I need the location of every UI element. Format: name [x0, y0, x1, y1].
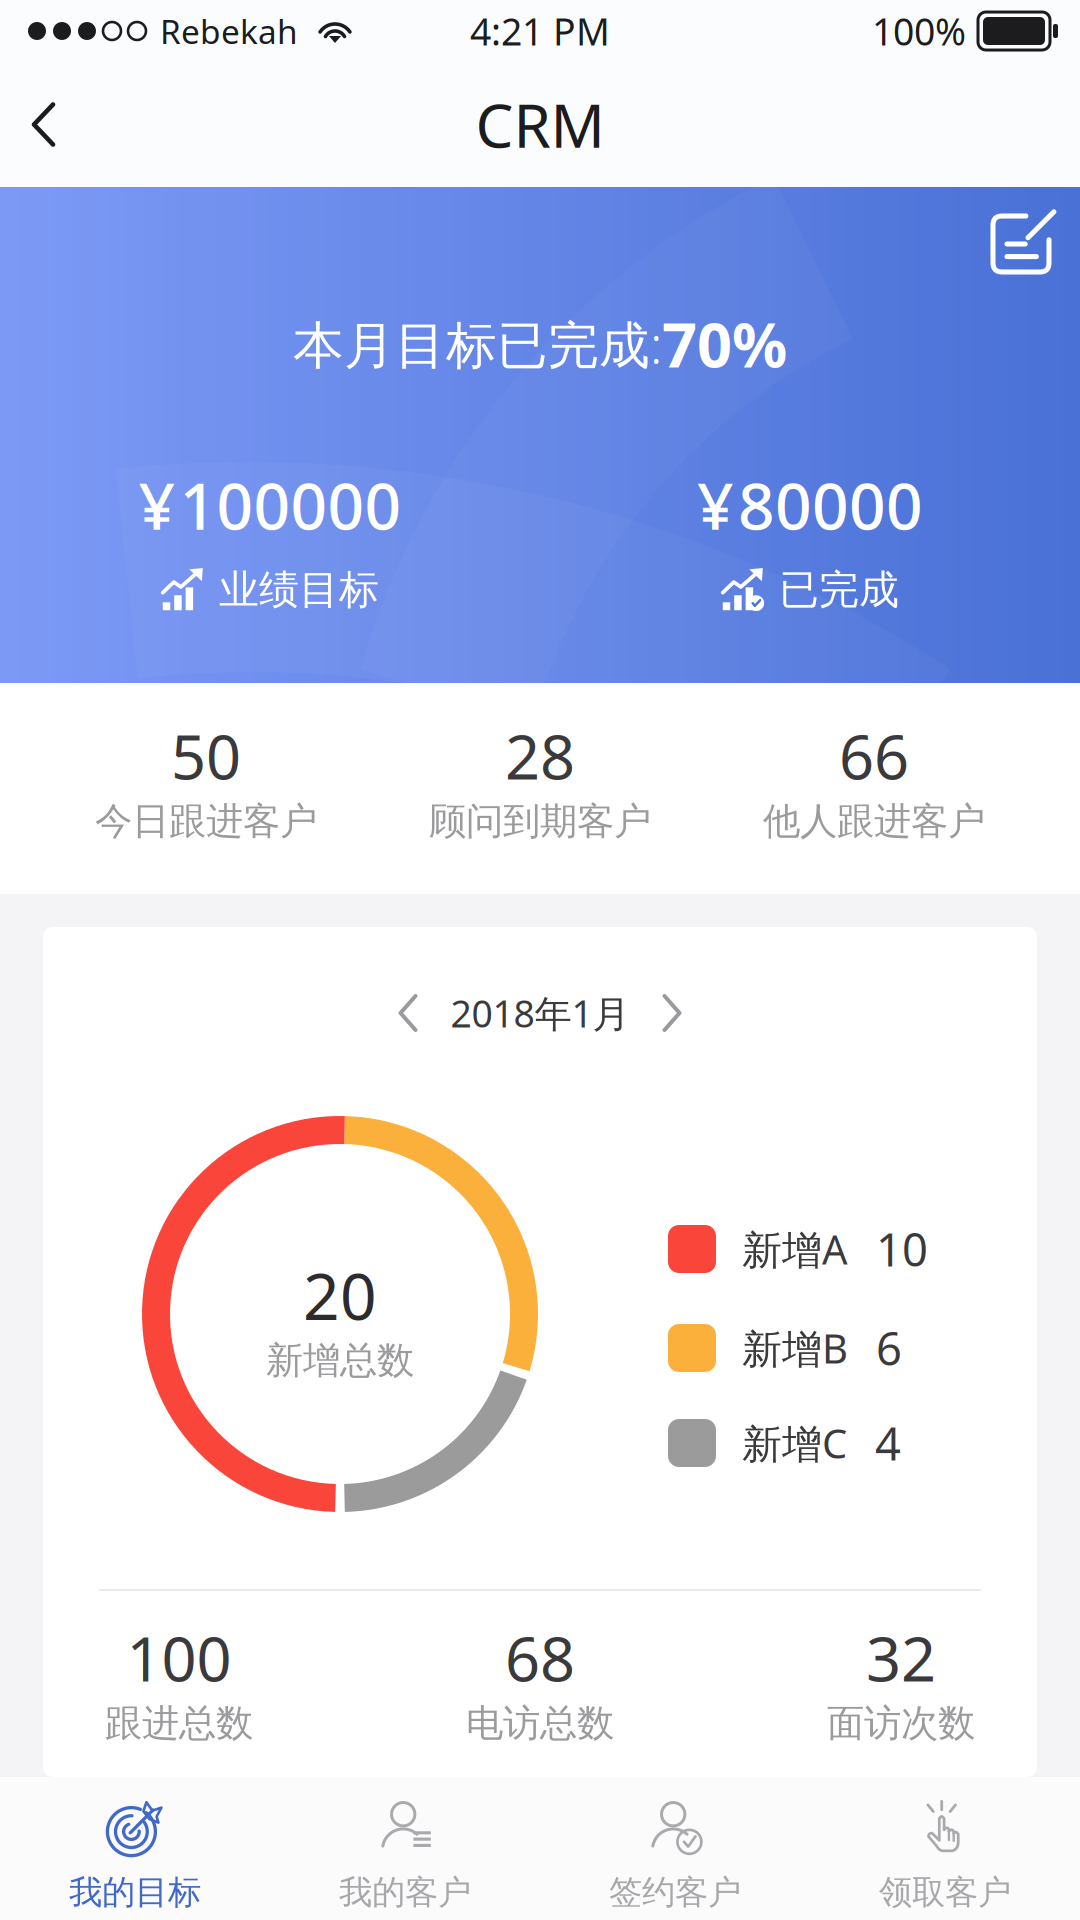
staticText: 4:21 PM [470, 6, 610, 56]
staticText: 10 [876, 1219, 928, 1279]
staticText: 我的客户 [339, 1872, 471, 1913]
staticText: Rebekah [160, 9, 298, 53]
staticText: 电访总数 [466, 1700, 614, 1746]
staticText: 100 [126, 1617, 231, 1698]
staticText: 面访次数 [827, 1700, 975, 1746]
button[interactable]: 我的目标 [0, 1770, 270, 1920]
staticText: 他人跟进客户 [763, 798, 985, 844]
staticText: 4 [875, 1413, 901, 1473]
staticText: 20 [303, 1253, 377, 1338]
staticText: ¥ [138, 462, 175, 547]
staticText: 跟进总数 [105, 1700, 253, 1746]
staticText: 新增A [742, 1222, 848, 1275]
staticText: 签约客户 [609, 1872, 741, 1913]
staticText: 本月目标已完成: [293, 310, 662, 377]
staticText: 新增C [742, 1416, 847, 1469]
staticText: 我的目标 [69, 1872, 201, 1913]
staticText: 领取客户 [879, 1872, 1011, 1913]
staticText: ¥ [697, 462, 734, 547]
button[interactable]: Back [0, 62, 88, 186]
staticText: 50 [171, 715, 241, 796]
staticText: 今日跟进客户 [95, 798, 317, 844]
staticText: 100000 [179, 462, 401, 547]
staticText: 2018年1月 [450, 988, 629, 1038]
staticText: 68 [505, 1617, 575, 1698]
staticText: 新增B [742, 1321, 848, 1374]
staticText: 顾问到期客户 [429, 798, 651, 844]
button[interactable]: Previous month [366, 973, 450, 1053]
button[interactable]: 领取客户 [810, 1770, 1080, 1920]
staticText: 已完成 [779, 565, 899, 614]
staticText: 新增总数 [266, 1338, 414, 1383]
button[interactable]: 我的客户 [270, 1770, 540, 1920]
staticText: 80000 [738, 462, 923, 547]
button[interactable]: Edit target [986, 187, 1080, 279]
staticText: CRM [475, 85, 604, 164]
button[interactable]: Next month [629, 973, 713, 1053]
staticText: 70% [662, 303, 787, 384]
staticText: 28 [505, 715, 575, 796]
staticText: 32 [866, 1617, 936, 1698]
staticText: 业绩目标 [219, 565, 379, 614]
staticText: 100% [872, 6, 966, 56]
button[interactable]: 签约客户 [540, 1770, 810, 1920]
staticText: 66 [839, 715, 909, 796]
staticText: 6 [876, 1318, 902, 1378]
